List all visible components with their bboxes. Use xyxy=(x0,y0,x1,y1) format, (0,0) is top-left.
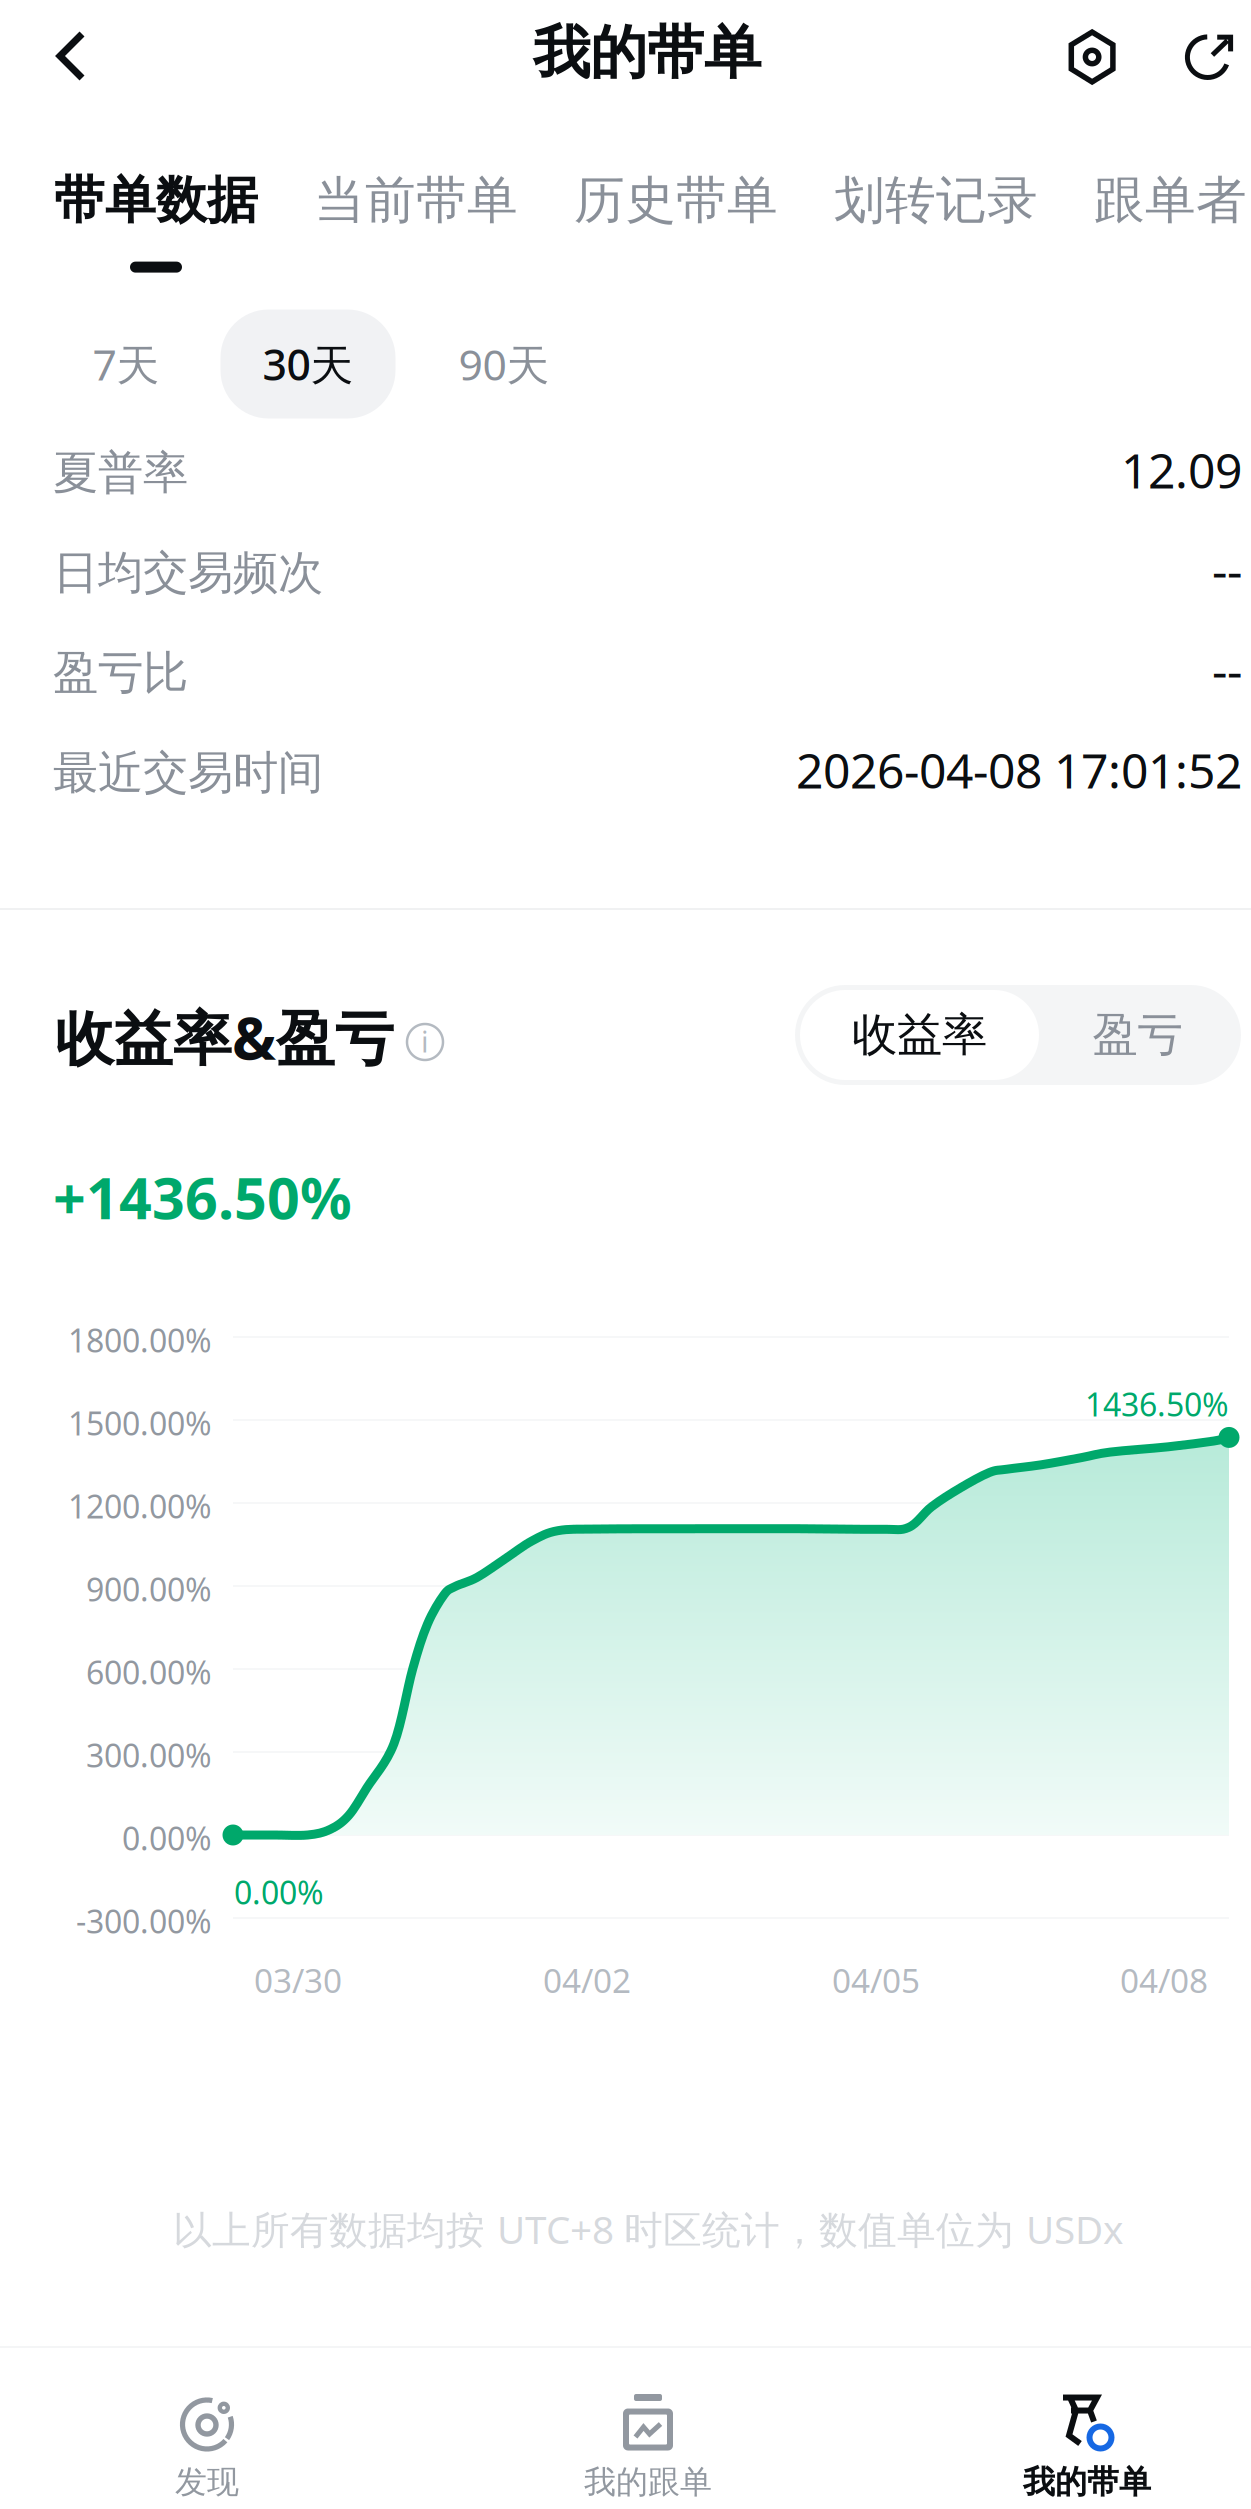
staticText: 收益率&盈亏 xyxy=(55,998,394,1076)
staticText: 1800.00% xyxy=(68,1319,212,1361)
staticText: 0.00% xyxy=(234,1871,324,1913)
staticText: 04/08 xyxy=(1120,1958,1208,2002)
button[interactable]: 当前带单 xyxy=(314,169,574,273)
staticText: 0.00% xyxy=(122,1817,212,1859)
button[interactable]: Share xyxy=(1162,0,1251,112)
staticText: 04/05 xyxy=(832,1958,920,2002)
button[interactable]: 划转记录 xyxy=(834,169,1094,273)
staticText: 夏普率 xyxy=(53,445,188,501)
staticText: 我的跟单 xyxy=(584,2462,712,2502)
staticText: 12.09 xyxy=(1121,438,1242,502)
staticText: 划转记录 xyxy=(834,169,1038,232)
staticText: 90天 xyxy=(458,336,549,392)
staticText: -300.00% xyxy=(76,1900,212,1942)
staticText: 以上所有数据均按 UTC+8 时区统计，数值单位为 USDx xyxy=(173,2203,1123,2255)
staticText: 600.00% xyxy=(86,1651,212,1693)
staticText: 盈亏比 xyxy=(53,645,188,701)
staticText: 1200.00% xyxy=(68,1485,212,1527)
staticText: 发现 xyxy=(175,2462,239,2502)
staticText: 1500.00% xyxy=(68,1402,212,1444)
staticText: 我的带单 xyxy=(533,18,761,88)
staticText: 1436.50% xyxy=(1085,1383,1229,1425)
staticText: 2026-04-08 17:01:52 xyxy=(796,738,1242,802)
staticText: 03/30 xyxy=(254,1958,342,2002)
staticText: 带单数据 xyxy=(54,169,258,232)
staticText: 日均交易频次 xyxy=(53,545,323,601)
staticText: 历史带单 xyxy=(574,169,778,232)
staticText: 我的带单 xyxy=(1023,2462,1151,2502)
button[interactable]: 收益率 xyxy=(800,990,1039,1080)
button[interactable]: Back xyxy=(11,0,131,112)
staticText: 当前带单 xyxy=(314,169,518,232)
staticText: +1436.50% xyxy=(53,1159,352,1235)
staticText: 7天 xyxy=(92,336,159,392)
button[interactable]: 带单数据 xyxy=(54,169,314,273)
button[interactable]: 跟单者 xyxy=(1094,169,1251,273)
button[interactable]: 我的跟单 xyxy=(439,2393,856,2509)
button[interactable]: 盈亏 xyxy=(1039,990,1236,1080)
staticText: 最近交易时间 xyxy=(53,745,323,801)
button[interactable]: 90天 xyxy=(424,309,584,418)
staticText: i xyxy=(421,1021,429,1060)
button[interactable]: 7天 xyxy=(51,309,201,418)
staticText: 30天 xyxy=(262,336,353,392)
button[interactable]: 我的带单 xyxy=(878,2393,1251,2509)
staticText: 盈亏 xyxy=(1092,1007,1182,1063)
staticText: -- xyxy=(1212,638,1242,702)
button[interactable]: 30天 xyxy=(220,309,395,418)
staticText: 跟单者 xyxy=(1094,169,1247,232)
staticText: 04/02 xyxy=(543,1958,631,2002)
staticText: 收益率 xyxy=(852,1007,987,1063)
button[interactable]: Settings xyxy=(1043,1,1141,113)
staticText: -- xyxy=(1212,538,1242,602)
staticText: 300.00% xyxy=(86,1734,212,1776)
button[interactable]: 发现 xyxy=(0,2393,415,2509)
button[interactable]: 历史带单 xyxy=(574,169,834,273)
staticText: 900.00% xyxy=(86,1568,212,1610)
